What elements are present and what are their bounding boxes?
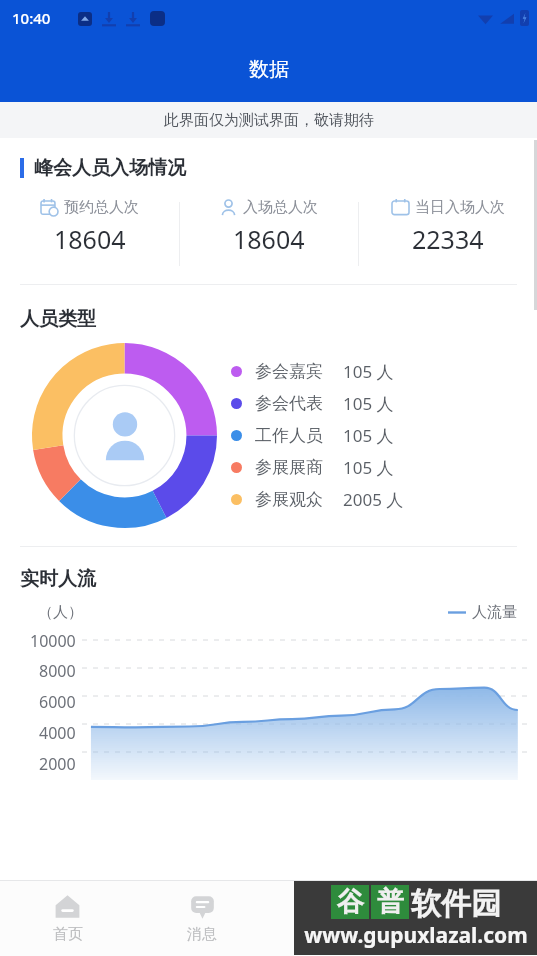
staticText: 参展观众 xyxy=(255,489,333,510)
staticText: 4000 xyxy=(39,722,76,744)
staticText: 峰会人员入场情况 xyxy=(34,156,186,180)
staticText: 首页 xyxy=(53,925,83,944)
staticText: 谷 xyxy=(337,885,364,919)
button[interactable]: 工作人员 xyxy=(231,424,394,447)
button[interactable]: 预约总人次 xyxy=(0,198,179,256)
staticText: 入场总人次 xyxy=(243,198,318,217)
staticText: 实时人流 xyxy=(20,567,96,591)
staticText: 参展展商 xyxy=(255,457,333,478)
staticText: 105 人 xyxy=(343,392,394,415)
staticText: 105 人 xyxy=(343,360,394,383)
staticText: 2005 人 xyxy=(343,488,404,511)
button[interactable]: 入场总人次 xyxy=(180,198,358,256)
staticText: 软件园 xyxy=(411,885,501,923)
staticText: 18604 xyxy=(233,222,305,256)
staticText: 工作人员 xyxy=(255,425,333,446)
button[interactable]: 参展观众 xyxy=(231,488,404,511)
staticText: 预约总人次 xyxy=(64,198,139,217)
staticText: www.gupuxlazal.com xyxy=(304,921,528,950)
staticText: 2000 xyxy=(39,753,76,775)
staticText: 人流量 xyxy=(472,603,517,622)
button[interactable]: 消息 xyxy=(135,881,269,956)
staticText: 105 人 xyxy=(343,456,394,479)
staticText: 此界面仅为测试界面，敬请期待 xyxy=(164,111,374,130)
staticText: 数据 xyxy=(249,57,289,82)
staticText: 8000 xyxy=(39,660,76,682)
button[interactable]: 应用台 xyxy=(269,881,403,956)
button[interactable]: 首页 xyxy=(0,881,135,956)
staticText: 22334 xyxy=(412,222,484,256)
staticText: 参会代表 xyxy=(255,393,333,414)
staticText: 18604 xyxy=(54,222,126,256)
staticText: 普 xyxy=(377,885,404,919)
button[interactable]: 参会代表 xyxy=(231,392,394,415)
staticText: （人） xyxy=(38,603,83,622)
button[interactable]: 当日入场人次 xyxy=(359,198,537,256)
staticText: 应用台 xyxy=(314,925,359,944)
staticText: 当日入场人次 xyxy=(415,198,505,217)
staticText: 105 人 xyxy=(343,424,394,447)
button[interactable]: 参展展商 xyxy=(231,456,394,479)
staticText: 参会嘉宾 xyxy=(255,361,333,382)
staticText: 人员类型 xyxy=(20,307,96,331)
staticText: 10:40 xyxy=(12,8,51,28)
staticText: 消息 xyxy=(187,925,217,944)
staticText: 10000 xyxy=(30,630,76,652)
staticText: 我的 xyxy=(455,925,485,944)
button[interactable]: 我的 xyxy=(403,881,537,956)
button[interactable]: 参会嘉宾 xyxy=(231,360,394,383)
staticText: 6000 xyxy=(39,691,76,713)
